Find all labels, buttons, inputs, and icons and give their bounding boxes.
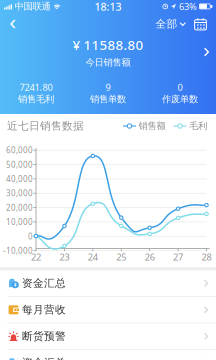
staticText: 近七日销售数据 bbox=[7, 119, 84, 132]
staticText: 全部 bbox=[155, 17, 177, 30]
staticText: 作废单数 bbox=[162, 93, 198, 105]
staticText: 40,000 bbox=[6, 174, 33, 184]
staticText: 10,000 bbox=[6, 217, 33, 227]
staticText: 每月营收 bbox=[22, 303, 66, 316]
staticText: 资金汇总 bbox=[22, 277, 66, 290]
staticText: 20,000 bbox=[6, 202, 33, 213]
staticText: 60,000 bbox=[6, 145, 33, 155]
button[interactable]: 资金汇总 bbox=[0, 270, 216, 296]
staticText: 23 bbox=[59, 251, 69, 263]
staticText: 18:13 bbox=[94, 0, 121, 14]
staticText: 30,000 bbox=[6, 188, 33, 198]
staticText: 销售毛利 bbox=[18, 93, 54, 105]
staticText: -10,000 bbox=[3, 245, 33, 256]
staticText: 24 bbox=[88, 251, 98, 263]
staticText: 资金汇总 bbox=[22, 356, 66, 360]
staticText: 50,000 bbox=[6, 159, 33, 170]
button[interactable]: 资金汇总 bbox=[0, 350, 216, 360]
button[interactable]: 断货预警 bbox=[0, 323, 216, 349]
staticText: 中国联通 bbox=[14, 1, 50, 12]
button[interactable]: ¥ 11588.80 bbox=[0, 36, 216, 68]
button[interactable]: Back bbox=[0, 13, 26, 35]
staticText: 毛利 bbox=[189, 120, 207, 132]
staticText: 25 bbox=[116, 251, 126, 263]
staticText: 0 bbox=[177, 81, 182, 93]
button[interactable]: 全部 bbox=[152, 13, 189, 35]
staticText: 22 bbox=[31, 251, 41, 263]
staticText: 27 bbox=[173, 251, 183, 263]
staticText: 7241.80 bbox=[19, 81, 52, 93]
staticText: 63% bbox=[179, 0, 197, 13]
staticText: 今日销售额 bbox=[85, 57, 130, 68]
staticText: ¥ 11588.80 bbox=[72, 36, 143, 54]
staticText: 断货预警 bbox=[22, 330, 66, 343]
staticText: 0 bbox=[28, 231, 33, 242]
button[interactable]: Calendar bbox=[189, 13, 212, 35]
staticText: 28 bbox=[201, 251, 211, 263]
staticText: 9 bbox=[105, 81, 110, 93]
staticText: 销售单数 bbox=[90, 93, 126, 105]
staticText: 26 bbox=[145, 251, 155, 263]
staticText: 销售额 bbox=[138, 120, 165, 132]
button[interactable]: 每月营收 bbox=[0, 297, 216, 323]
